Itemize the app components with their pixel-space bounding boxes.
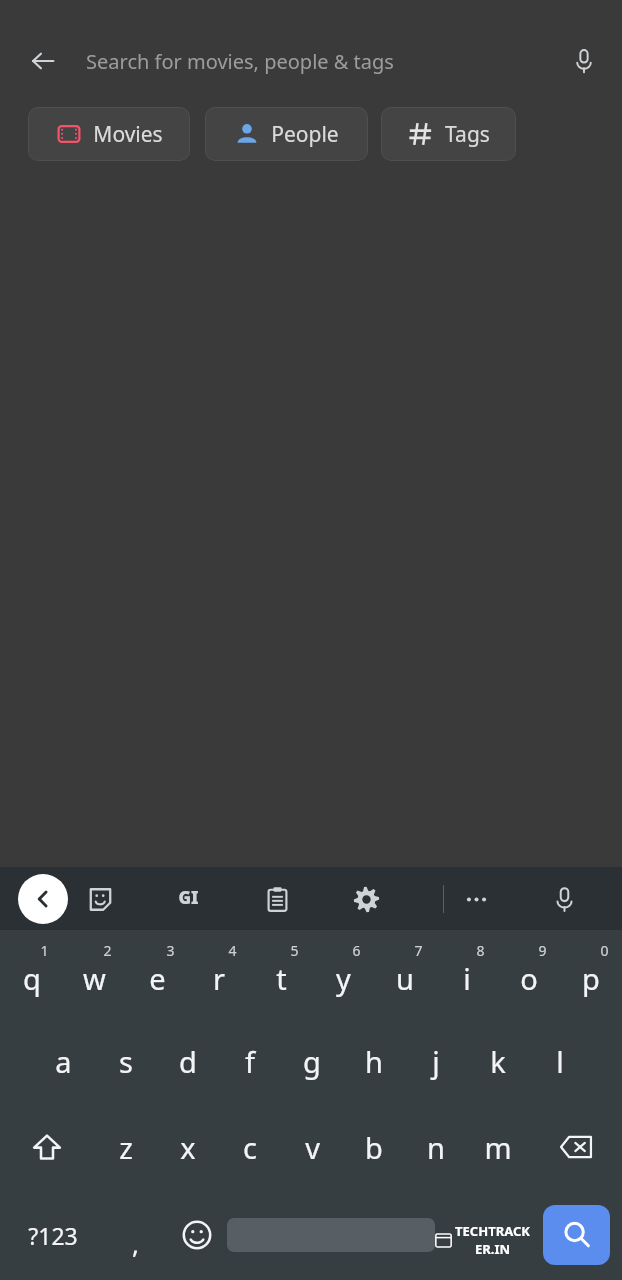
button[interactable]: , [105,1190,166,1280]
button[interactable]: u [374,930,436,1018]
staticText: z [119,1128,133,1167]
staticText: d [179,1042,197,1081]
staticText: Movies [93,120,163,149]
button[interactable]: Search [530,1190,622,1280]
button[interactable]: People [205,107,368,161]
staticText: r [213,959,225,998]
staticText: h [365,1042,383,1081]
staticText: 2 [103,941,112,960]
staticText: 1 [40,941,49,960]
button[interactable]: f [219,1018,281,1104]
staticText: o [520,959,538,998]
button[interactable]: ?123 [0,1190,105,1280]
staticText: x [180,1128,196,1167]
button[interactable]: h [343,1018,405,1104]
button[interactable]: l [529,1018,591,1104]
button[interactable]: s [95,1018,157,1104]
button[interactable]: y [312,930,374,1018]
button[interactable]: Emoji [166,1190,227,1280]
staticText: w [83,959,106,998]
button[interactable]: q [0,930,63,1018]
staticText: k [490,1042,506,1081]
staticText: 4 [228,941,237,960]
button[interactable]: t [250,930,312,1018]
staticText: m [484,1128,512,1167]
button[interactable]: g [281,1018,343,1104]
button[interactable]: Back [0,34,86,88]
staticText: a [55,1042,72,1081]
button[interactable]: e [126,930,188,1018]
button[interactable]: d [157,1018,219,1104]
button[interactable]: Tags [381,107,516,161]
button[interactable]: a [32,1018,95,1104]
staticText: TECHTRACKER.IN [455,1222,530,1258]
button[interactable]: v [281,1104,343,1190]
staticText: 0 [600,941,609,960]
button[interactable]: Clipboard [252,874,302,924]
button[interactable]: b [343,1104,405,1190]
staticText: u [396,959,414,998]
staticText: e [149,959,166,998]
button[interactable]: Stickers [75,874,125,924]
staticText: y [336,959,351,998]
staticText: n [427,1128,445,1167]
staticText: GIF [175,886,202,913]
staticText: ?123 [28,1220,78,1251]
staticText: s [119,1042,133,1081]
staticText: p [582,959,600,998]
button[interactable]: z [94,1104,157,1190]
button[interactable]: More options [451,874,501,924]
staticText: c [243,1128,257,1167]
staticText: 7 [414,941,423,960]
staticText: 8 [476,941,485,960]
staticText: Search for movies, people & tags [86,48,394,75]
button[interactable]: x [157,1104,219,1190]
button[interactable]: Close toolbar [18,874,68,924]
button[interactable]: r [188,930,250,1018]
staticText: v [305,1128,320,1167]
button[interactable]: Backspace [529,1104,622,1190]
button[interactable]: i [436,930,498,1018]
button[interactable]: m [467,1104,529,1190]
button[interactable]: p [560,930,622,1018]
button[interactable]: Movies [28,107,190,161]
button[interactable]: Voice search [546,34,622,88]
staticText: l [556,1042,564,1081]
button[interactable]: Settings [341,874,391,924]
staticText: g [303,1042,321,1081]
staticText: f [245,1042,255,1081]
button[interactable]: j [405,1018,467,1104]
button[interactable]: c [219,1104,281,1190]
staticText: i [463,959,471,998]
staticText: , [132,1226,139,1261]
staticText: People [271,120,339,149]
button[interactable]: Space [227,1190,435,1280]
staticText: 6 [352,941,361,960]
button[interactable]: w [63,930,126,1018]
staticText: j [432,1042,440,1081]
staticText: 3 [166,941,175,960]
staticText: 5 [290,941,299,960]
button[interactable]: o [498,930,560,1018]
button[interactable]: n [405,1104,467,1190]
staticText: t [276,959,287,998]
staticText: 9 [538,941,547,960]
button[interactable]: GIF [163,874,213,924]
staticText: q [23,959,41,998]
button[interactable]: k [467,1018,529,1104]
button[interactable]: Shift [0,1104,94,1190]
staticText: Tags [445,120,490,149]
staticText: b [365,1128,383,1167]
button[interactable]: Voice input [539,874,589,924]
